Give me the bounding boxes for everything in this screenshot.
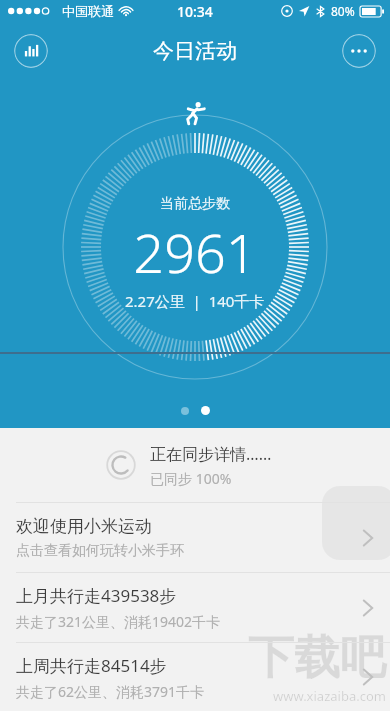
staticText: 上月共行走439538步 <box>16 584 177 607</box>
button[interactable]: 上周共行走84514步 <box>0 643 390 711</box>
staticText: 下载吧 <box>248 629 386 687</box>
staticText: 共走了321公里、消耗19402千卡 <box>16 612 221 631</box>
staticText: 今日活动 <box>153 38 237 64</box>
button[interactable]: 上月共行走439538步 <box>0 573 390 642</box>
button[interactable]: 统计 <box>14 34 48 68</box>
staticText: 共走了62公里、消耗3791千卡 <box>16 682 205 701</box>
staticText: 上周共行走84514步 <box>16 654 167 677</box>
button[interactable]: 欢迎使用小米运动 <box>0 503 390 572</box>
staticText: 10:34 <box>177 2 213 21</box>
staticText: 当前总步数 <box>160 195 230 213</box>
staticText: www.xiazaiba.com <box>273 687 386 705</box>
staticText: 2961 <box>133 215 257 289</box>
staticText: 80% <box>331 3 355 19</box>
button[interactable]: 更多 <box>342 34 376 68</box>
button[interactable]: 正在同步详情…… <box>0 428 390 502</box>
staticText: 已同步 100% <box>150 469 232 488</box>
staticText: 2.27公里 | 140千卡 <box>125 291 265 311</box>
staticText: 中国联通 <box>62 3 114 19</box>
staticText: 欢迎使用小米运动 <box>16 516 152 537</box>
staticText: 点击查看如何玩转小米手环 <box>16 542 184 560</box>
staticText: 正在同步详情…… <box>150 443 272 465</box>
